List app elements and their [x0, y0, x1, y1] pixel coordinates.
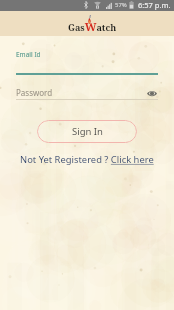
staticText: Sign In — [72, 125, 103, 138]
staticText: 6:57 p.m. — [138, 0, 171, 10]
staticText: GasWatch — [68, 19, 117, 34]
button[interactable]: Not Yet Registered ? Click here — [20, 153, 154, 166]
staticText: Email Id — [16, 50, 41, 59]
button[interactable]: Sign In — [37, 120, 137, 143]
button[interactable]: Show password — [145, 87, 158, 100]
staticText: 57% — [115, 1, 127, 9]
staticText: Password — [16, 87, 53, 98]
